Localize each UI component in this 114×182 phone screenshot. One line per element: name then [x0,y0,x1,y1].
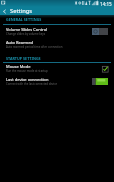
button[interactable]: Back [0,7,114,15]
staticText: 14:15 [100,1,112,7]
button[interactable]: Auto Rearmed [0,38,114,51]
button[interactable]: Last device connection [0,75,114,88]
staticText: Run the mouse mode at startup [6,69,48,73]
staticText: Mouse Mode [6,64,31,69]
button[interactable]: Volume Slides Control [0,25,114,38]
staticText: Auto rearmed period time after connectio… [6,45,63,49]
staticText: STARTUP SETTINGS [6,56,41,61]
staticText: Change slides by volume keys [6,32,46,36]
staticText: Settings [10,7,33,15]
button[interactable]: Mouse Mode [0,62,114,75]
staticText: Volume Slides Control [6,27,48,32]
staticText: Auto Rearmed [6,40,34,45]
button[interactable]: Switch off [92,28,108,35]
staticText: Last device connection [6,77,49,82]
staticText: GENERAL SETTINGS [6,17,42,22]
button[interactable]: Switch on [92,78,108,85]
staticText: Connect with the last connected device [6,82,58,86]
button[interactable]: Enabled checkbox [101,65,109,73]
